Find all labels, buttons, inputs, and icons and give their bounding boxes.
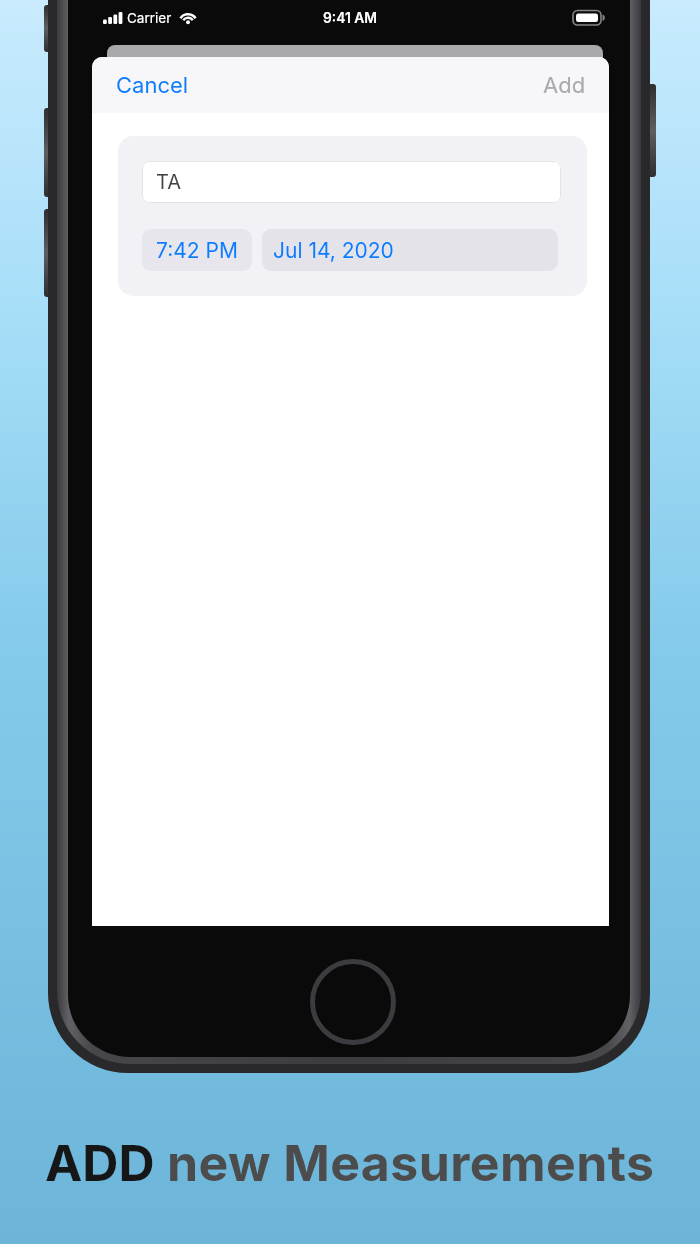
button[interactable]: TA (142, 161, 561, 203)
staticText: TA (156, 170, 182, 194)
staticText: 7:42 PM (156, 238, 238, 263)
staticText: Cancel (116, 72, 189, 99)
staticText: Jul 14, 2020 (273, 238, 394, 263)
staticText: Add (543, 72, 586, 99)
staticText: 9:41 AM (323, 10, 378, 27)
button[interactable]: Add (543, 72, 586, 99)
button[interactable]: Cancel (116, 72, 189, 99)
staticText: Carrier (127, 10, 172, 26)
staticText: new Measurements (167, 1133, 655, 1193)
button[interactable]: 7:42 PM (142, 229, 252, 271)
staticText: ADD (45, 1133, 167, 1193)
button[interactable]: Jul 14, 2020 (262, 229, 558, 271)
